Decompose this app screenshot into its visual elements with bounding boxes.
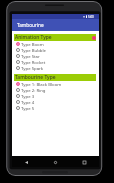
staticText: Type 3 (21, 93, 35, 99)
staticText: Tambourine Type (15, 74, 56, 81)
button[interactable]: Type 3 (12, 93, 99, 99)
button[interactable]: Type Spark (12, 65, 99, 71)
staticText: 5:00 (88, 15, 94, 19)
staticText: Type Rocket (21, 59, 46, 65)
staticText: Type 5 (21, 105, 35, 111)
staticText: Type 1: Black Bloom (21, 81, 62, 87)
button[interactable]: Type 2: Ring (12, 87, 99, 93)
button[interactable]: Back (19, 157, 33, 167)
button[interactable]: Tambourine (12, 19, 99, 31)
staticText: Type 2: Ring (21, 87, 46, 93)
button[interactable]: Type Rocket (12, 59, 99, 65)
button[interactable]: Recents (77, 157, 91, 167)
staticText: Tambourine (17, 22, 44, 28)
staticText: Type Boom (21, 41, 44, 47)
staticText: Type Bubble (21, 47, 46, 53)
button[interactable]: Tambourine Type (14, 74, 96, 81)
button[interactable]: Type 5 (12, 105, 99, 111)
staticText: Animation Type (15, 34, 52, 41)
button[interactable]: Type Boom (12, 41, 99, 47)
staticText: Type Spark (21, 65, 44, 71)
button[interactable]: Type 1: Black Bloom (12, 81, 99, 87)
button[interactable]: Animation Type (14, 34, 96, 41)
button[interactable]: Type 4 (12, 99, 99, 105)
button[interactable]: Home (48, 157, 62, 167)
button[interactable]: Type Bubble (12, 47, 99, 53)
staticText: Type Star (21, 53, 40, 59)
staticText: Type 4 (21, 99, 35, 105)
button[interactable]: Type Star (12, 53, 99, 59)
